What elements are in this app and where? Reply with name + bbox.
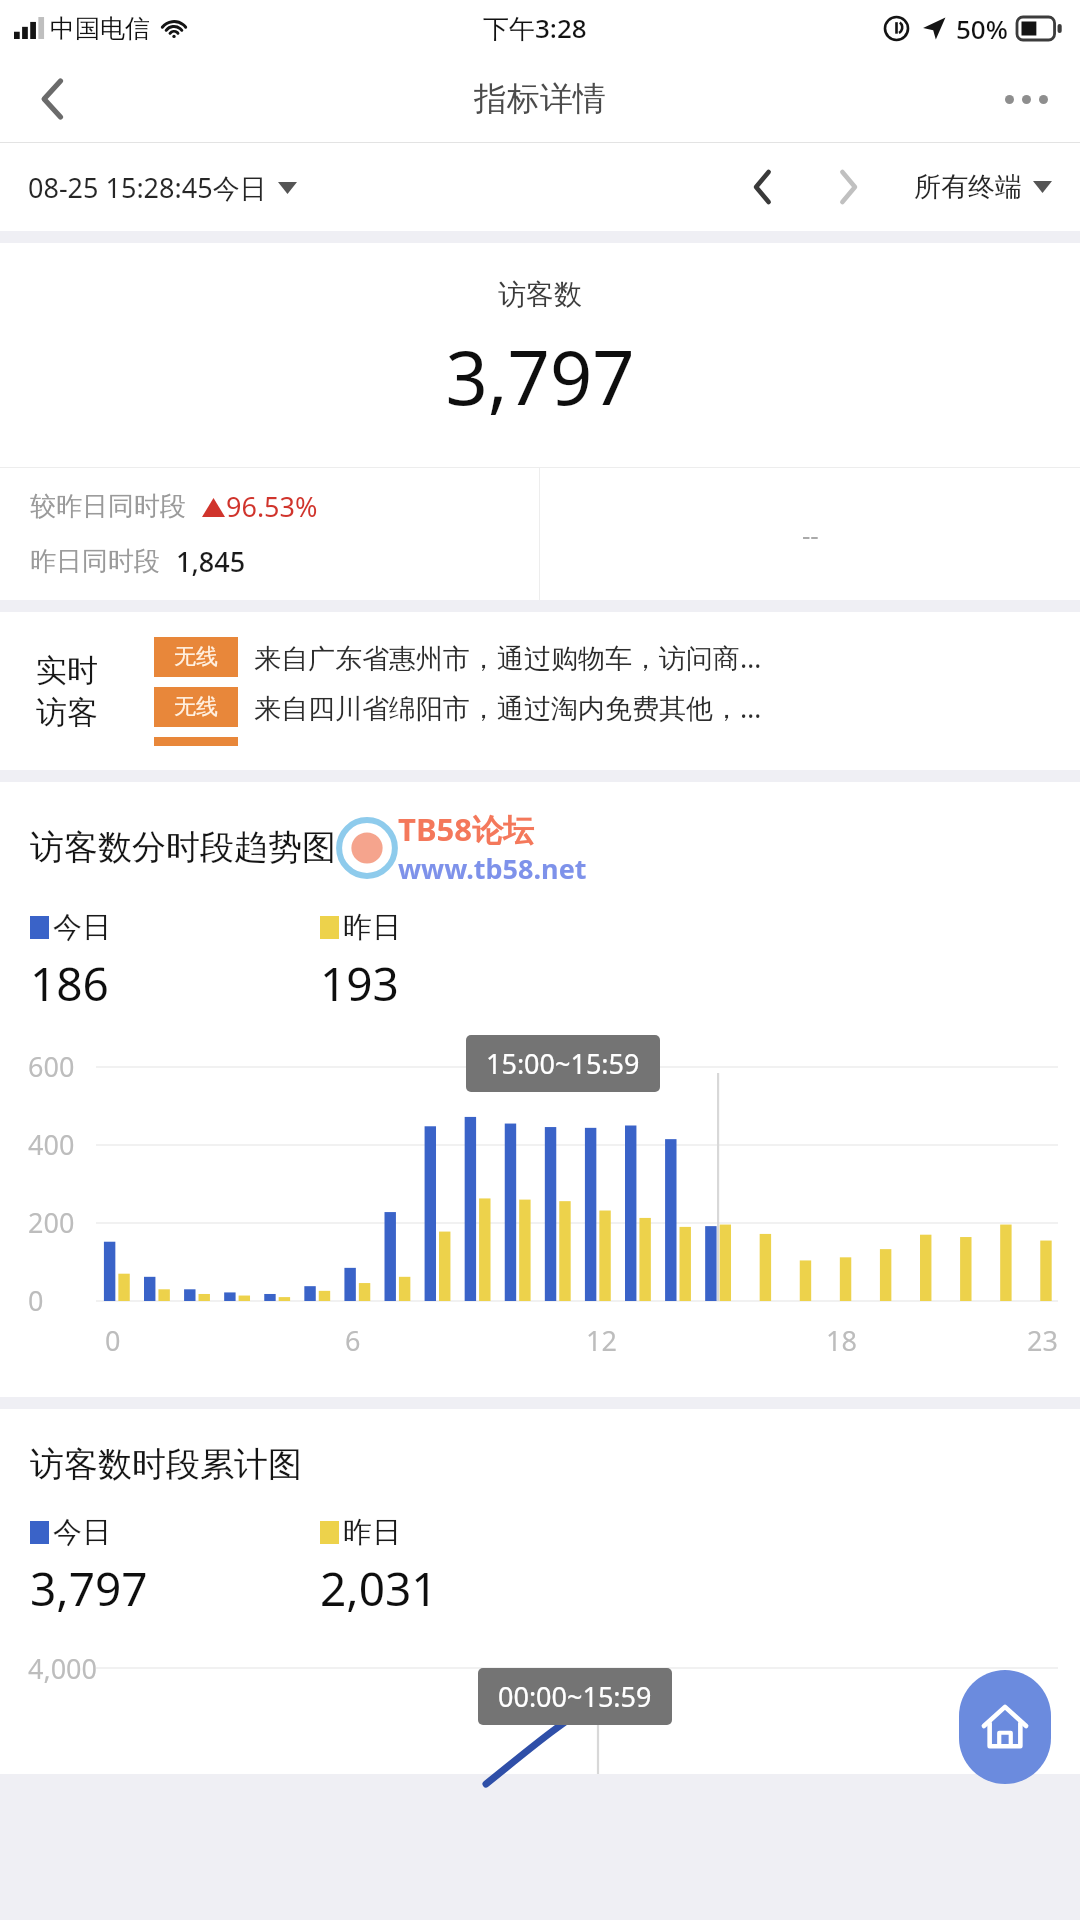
staticText: 无线 [174, 643, 218, 671]
button[interactable]: More options [992, 65, 1060, 133]
staticText: -- [802, 517, 819, 552]
staticText: 中国电信 [50, 13, 150, 44]
staticText: 08-25 15:28:45今日 [28, 169, 267, 206]
staticText: 访客数 [0, 277, 1080, 312]
staticText: 3,797 [0, 326, 1080, 427]
staticText: 实时 [36, 651, 98, 690]
staticText: 200 [28, 1204, 75, 1241]
staticText: 所有终端 [914, 170, 1022, 204]
staticText: 今日 [53, 1514, 111, 1551]
staticText: 0 [105, 1322, 121, 1359]
staticText: 193 [320, 952, 399, 1015]
staticText: 来自广东省惠州市，通过购物车，访问商… [254, 639, 762, 676]
button[interactable]: 实时 [0, 612, 1080, 770]
button[interactable]: 较昨日同时段 [0, 468, 539, 600]
staticText: 15:00~15:59 [486, 1045, 640, 1082]
button[interactable]: Next period [816, 155, 880, 219]
staticText: 400 [28, 1126, 75, 1163]
staticText: 23 [1027, 1322, 1058, 1359]
staticText: 昨日 [343, 909, 401, 946]
staticText: 下午3:28 [483, 10, 587, 46]
button[interactable]: 所有终端 [914, 160, 1052, 214]
button[interactable]: Previous period [730, 155, 794, 219]
staticText: 186 [30, 952, 109, 1015]
staticText: 4,000 [28, 1650, 98, 1687]
button[interactable]: 08-25 15:28:45今日 [28, 159, 297, 216]
button[interactable]: Back [18, 65, 86, 133]
staticText: 昨日同时段 [30, 545, 160, 578]
staticText: 18 [826, 1322, 857, 1359]
staticText: 3,797 [30, 1557, 148, 1620]
staticText: 今日 [53, 909, 111, 946]
staticText: 2,031 [320, 1557, 438, 1620]
staticText: www.tb58.net [398, 850, 587, 887]
staticText: 12 [586, 1322, 617, 1359]
staticText: TB58论坛 [398, 808, 534, 850]
staticText: 0 [28, 1282, 44, 1319]
staticText: 1,845 [176, 543, 246, 580]
staticText: 600 [28, 1048, 75, 1085]
staticText: 96.53% [226, 488, 318, 525]
staticText: 无线 [174, 693, 218, 721]
staticText: 昨日 [343, 1514, 401, 1551]
staticText: 来自四川省绵阳市，通过淘内免费其他，… [254, 689, 762, 726]
staticText: 50% [956, 11, 1008, 46]
staticText: 访客 [36, 693, 98, 732]
staticText: 访客数分时段趋势图 [30, 826, 336, 869]
staticText: 访客数时段累计图 [30, 1443, 302, 1486]
staticText: 6 [345, 1322, 361, 1359]
staticText: 00:00~15:59 [498, 1678, 652, 1715]
staticText: 指标详情 [474, 78, 606, 120]
button[interactable]: Home [959, 1670, 1051, 1784]
staticText: 较昨日同时段 [30, 490, 186, 523]
